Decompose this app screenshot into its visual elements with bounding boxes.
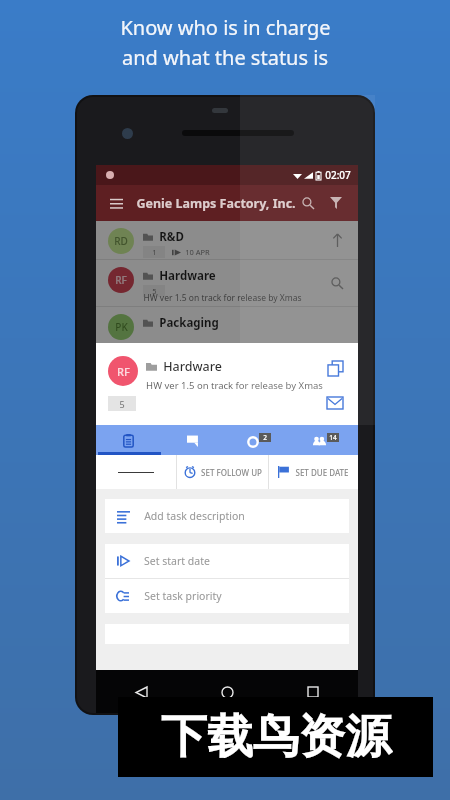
button[interactable]: Messages <box>161 425 226 455</box>
staticText: and what the status is <box>122 44 328 71</box>
staticText: 2 <box>263 433 267 442</box>
staticText: Hardware <box>159 268 216 284</box>
button[interactable]: None <box>96 455 176 489</box>
button[interactable]: Email <box>322 390 348 416</box>
button[interactable]: Progress <box>226 425 292 455</box>
staticText: Set start date <box>144 554 210 568</box>
button[interactable]: Set task priority <box>105 579 349 613</box>
button[interactable]: SET DUE DATE <box>269 455 358 489</box>
button[interactable]: People <box>292 425 358 455</box>
staticText: 5 <box>152 286 157 296</box>
button[interactable]: Home <box>216 681 238 703</box>
staticText: R&D <box>159 229 184 245</box>
staticText: SET DUE DATE <box>295 467 349 478</box>
button[interactable]: Back <box>130 681 152 703</box>
staticText: 10 APR <box>185 247 210 257</box>
staticText: 1 <box>152 247 157 257</box>
button[interactable]: Copy <box>322 355 348 381</box>
staticText: Hardware <box>163 358 222 375</box>
staticText: Genie Lamps Factory, Inc. <box>136 195 296 212</box>
staticText: 5 <box>119 398 125 410</box>
staticText: RF <box>117 364 130 379</box>
staticText: HW ver 1.5 on track for release by Xmas <box>143 292 302 304</box>
button[interactable]: Menu <box>105 192 127 214</box>
staticText: RF <box>115 273 127 287</box>
button[interactable]: Filter <box>324 191 348 215</box>
staticText: Set task priority <box>144 589 222 603</box>
button[interactable]: Search <box>296 191 320 215</box>
button[interactable]: Recents <box>302 681 324 703</box>
button[interactable]: Add task description <box>105 499 349 533</box>
staticText: 下载鸟资源 <box>161 708 391 766</box>
staticText: 02:07 <box>325 168 351 182</box>
staticText: Packaging <box>159 315 219 331</box>
staticText: 14 <box>329 433 337 442</box>
staticText: Add task description <box>144 509 245 523</box>
staticText: RD <box>114 234 128 248</box>
button[interactable]: Set start date <box>105 544 349 578</box>
staticText: PK <box>115 320 128 334</box>
button[interactable]: SET FOLLOW UP <box>177 455 268 489</box>
staticText: Know who is in charge <box>120 14 331 41</box>
staticText: SET FOLLOW UP <box>201 467 262 478</box>
staticText: HW ver 1.5 on track for release by Xmas <box>146 379 323 392</box>
button[interactable]: Tasks <box>96 425 161 455</box>
